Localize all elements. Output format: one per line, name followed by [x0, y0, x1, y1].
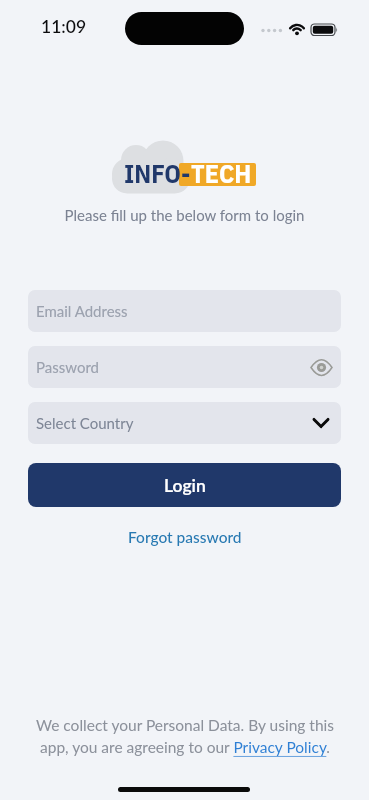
staticText: INFO	[124, 156, 181, 190]
button[interactable]: Password	[28, 346, 341, 388]
button[interactable]: Select Country	[28, 402, 341, 444]
button[interactable]: Forgot password	[128, 528, 242, 547]
staticText: Login	[164, 475, 206, 496]
button[interactable]: Login	[28, 463, 341, 507]
staticText: Forgot password	[128, 528, 242, 547]
button[interactable]: Email Address	[28, 290, 341, 332]
staticText: 11:09	[41, 16, 87, 37]
staticText: Email Address	[36, 302, 128, 320]
staticText: TECH	[191, 156, 252, 190]
staticText: We collect your Personal Data. By using …	[36, 716, 334, 756]
staticText: Please fill up the below form to login	[0, 206, 369, 224]
staticText: Select Country	[36, 414, 134, 432]
staticText: -	[181, 156, 191, 190]
staticText: Password	[36, 358, 99, 376]
button[interactable]: We collect your Personal Data. By using …	[0, 716, 369, 756]
